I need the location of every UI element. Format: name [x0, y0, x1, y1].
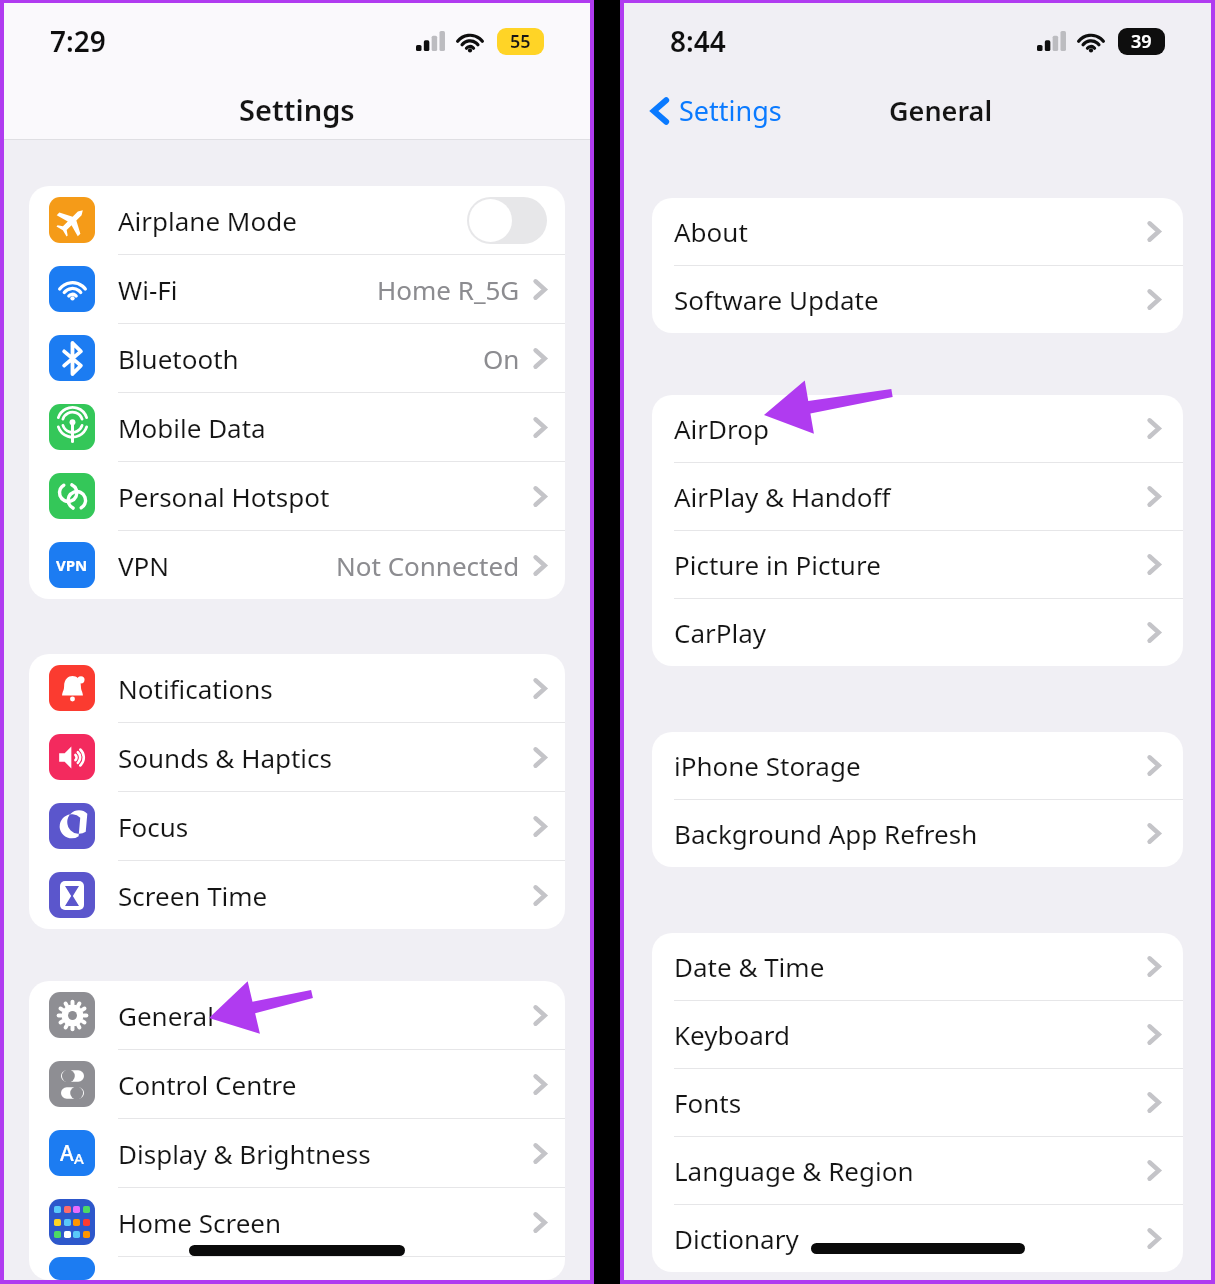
staticText: Background App Refresh	[674, 816, 978, 851]
staticText: A	[74, 1148, 84, 1168]
button[interactable]: Dictionary	[652, 1205, 1183, 1272]
staticText: 39	[1131, 29, 1152, 54]
button[interactable]: Picture in Picture	[652, 531, 1183, 599]
button[interactable]: About	[652, 198, 1183, 266]
staticText: AirPlay & Handoff	[674, 479, 891, 514]
button[interactable]: iPhone Storage	[652, 732, 1183, 800]
staticText: Notifications	[118, 671, 273, 706]
staticText: Settings	[239, 90, 355, 129]
staticText: Sounds & Haptics	[118, 740, 333, 775]
staticText: 7:29	[50, 22, 106, 60]
button[interactable]: Language & Region	[652, 1137, 1183, 1205]
staticText: iPhone Storage	[674, 748, 861, 783]
button[interactable]: Screen Time	[29, 861, 565, 929]
staticText: Focus	[118, 809, 189, 844]
staticText: Screen Time	[118, 878, 268, 913]
button[interactable]: Personal Hotspot	[29, 462, 565, 531]
staticText: Settings	[679, 92, 782, 129]
staticText: Home R_5G	[377, 272, 520, 307]
staticText: Wi-Fi	[118, 272, 178, 307]
button[interactable]: Date & Time	[652, 933, 1183, 1001]
staticText: Language & Region	[674, 1153, 914, 1188]
button[interactable]: Airplane Mode toggle, off	[467, 197, 547, 244]
button[interactable]: General	[29, 981, 565, 1050]
staticText: 8:44	[670, 22, 726, 60]
staticText: A	[60, 1139, 74, 1168]
other: Back to Settings	[650, 96, 669, 126]
button[interactable]: VPN	[29, 531, 565, 599]
button[interactable]	[29, 1257, 565, 1280]
button[interactable]: Wi-Fi	[29, 255, 565, 324]
button[interactable]: CarPlay	[652, 599, 1183, 666]
button[interactable]: Keyboard	[652, 1001, 1183, 1069]
staticText: Home Screen	[118, 1205, 282, 1240]
staticText: CarPlay	[674, 615, 767, 650]
staticText: On	[483, 341, 520, 376]
staticText: Control Centre	[118, 1067, 297, 1102]
staticText: VPN	[118, 548, 170, 583]
button[interactable]: Back to Settings	[644, 86, 788, 135]
button[interactable]: AirPlay & Handoff	[652, 463, 1183, 531]
button[interactable]: AirDrop	[652, 395, 1183, 463]
button[interactable]: Fonts	[652, 1069, 1183, 1137]
staticText: AirDrop	[674, 411, 769, 446]
staticText: 55	[510, 29, 531, 54]
button[interactable]: Control Centre	[29, 1050, 565, 1119]
staticText: Mobile Data	[118, 410, 266, 445]
staticText: Date & Time	[674, 949, 825, 984]
button[interactable]: Sounds & Haptics	[29, 723, 565, 792]
button[interactable]: Bluetooth	[29, 324, 565, 393]
staticText: About	[674, 214, 748, 249]
staticText: Keyboard	[674, 1017, 791, 1052]
staticText: Not Connected	[336, 548, 520, 583]
button[interactable]: Mobile Data	[29, 393, 565, 462]
button[interactable]: Airplane Mode	[29, 186, 565, 255]
staticText: Display & Brightness	[118, 1136, 371, 1171]
staticText: Personal Hotspot	[118, 479, 330, 514]
button[interactable]: A	[29, 1119, 565, 1188]
staticText: Picture in Picture	[674, 547, 881, 582]
staticText: General	[118, 998, 214, 1033]
staticText: Software Update	[674, 282, 879, 317]
staticText: Fonts	[674, 1085, 742, 1120]
staticText: Dictionary	[674, 1221, 799, 1256]
staticText: Airplane Mode	[118, 203, 297, 238]
button[interactable]: Background App Refresh	[652, 800, 1183, 867]
staticText: VPN	[56, 555, 88, 575]
button[interactable]: Focus	[29, 792, 565, 861]
staticText: Bluetooth	[118, 341, 239, 376]
button[interactable]: Home Screen	[29, 1188, 565, 1257]
button[interactable]: Notifications	[29, 654, 565, 723]
button[interactable]: Software Update	[652, 266, 1183, 333]
staticText: General	[889, 92, 993, 129]
